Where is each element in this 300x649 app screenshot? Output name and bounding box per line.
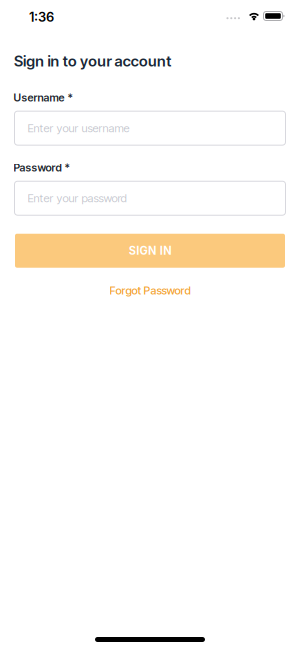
staticText: * [67, 91, 72, 104]
staticText: Username [13, 91, 64, 104]
staticText: 1:36 [29, 9, 54, 25]
staticText: SIGN IN [129, 244, 171, 257]
staticText: Enter your username [27, 121, 129, 135]
button[interactable]: Enter your password [14, 181, 285, 215]
button[interactable]: Enter your username [14, 111, 285, 145]
staticText: Sign in to your account [14, 52, 171, 70]
button[interactable]: SIGN IN [15, 234, 285, 268]
button[interactable]: Forgot Password [109, 284, 190, 297]
staticText: Forgot Password [109, 284, 190, 297]
staticText: Password [13, 161, 61, 174]
staticText: Enter your password [27, 191, 126, 205]
staticText: * [64, 161, 69, 174]
